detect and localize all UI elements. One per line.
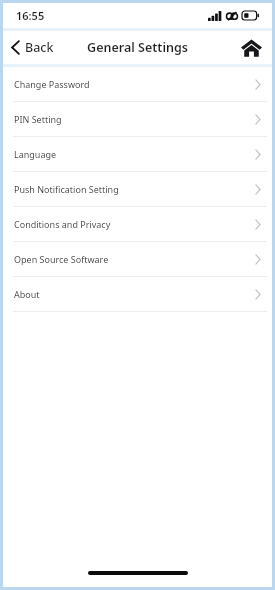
button[interactable]: Conditions and Privacy bbox=[3, 207, 272, 241]
button[interactable]: Language bbox=[3, 137, 272, 171]
button[interactable]: Back bbox=[3, 34, 64, 61]
staticText: PIN Setting bbox=[14, 113, 62, 125]
button[interactable]: Push Notification Setting bbox=[3, 172, 272, 206]
staticText: Change Password bbox=[14, 78, 90, 90]
button[interactable]: Open Source Software bbox=[3, 242, 272, 276]
staticText: General Settings bbox=[87, 39, 188, 56]
button[interactable]: Home bbox=[231, 33, 272, 63]
staticText: Open Source Software bbox=[14, 253, 109, 265]
button[interactable]: PIN Setting bbox=[3, 102, 272, 136]
button[interactable]: Change Password bbox=[3, 67, 272, 101]
staticText: Back bbox=[25, 39, 54, 56]
staticText: Conditions and Privacy bbox=[14, 218, 111, 230]
staticText: Language bbox=[14, 148, 57, 160]
staticText: About bbox=[14, 288, 40, 300]
staticText: 16:55 bbox=[16, 8, 45, 23]
staticText: Push Notification Setting bbox=[14, 183, 119, 195]
button[interactable]: About bbox=[3, 277, 272, 311]
